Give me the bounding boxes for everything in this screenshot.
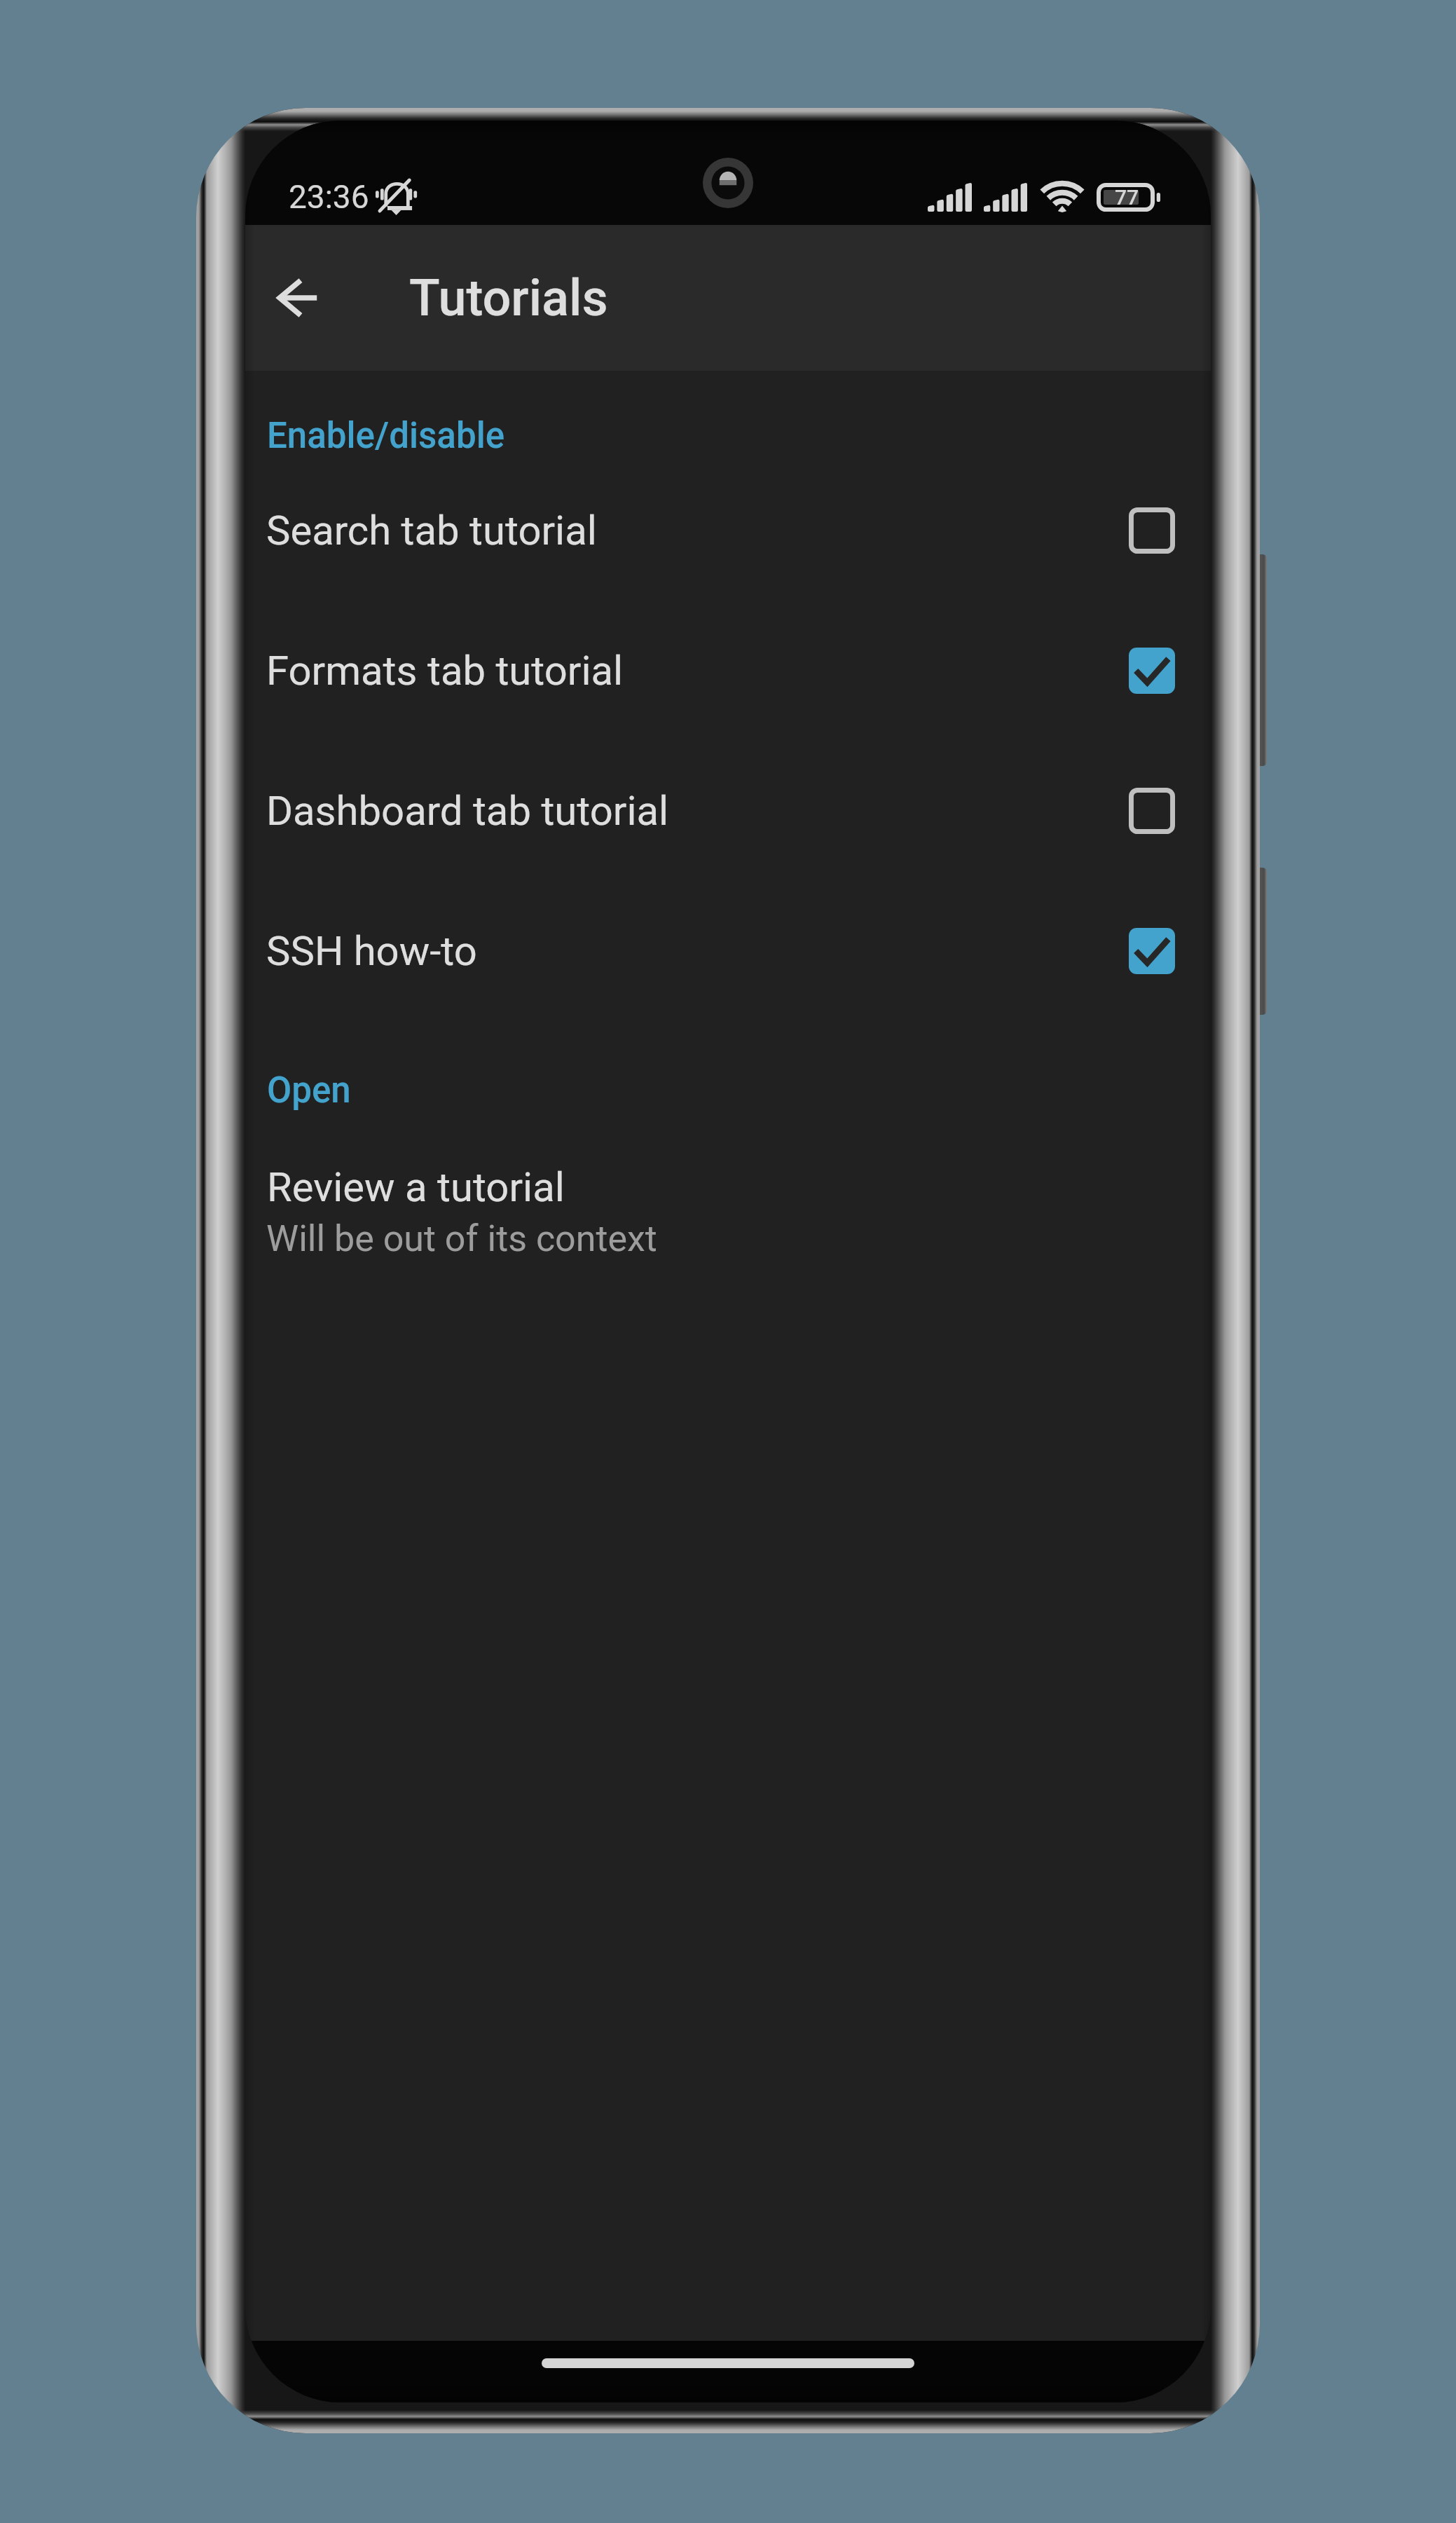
staticText: Tutorials xyxy=(409,268,608,327)
staticText: 23:36 xyxy=(289,178,369,216)
button[interactable]: Review a tutorial xyxy=(245,1163,1211,1275)
button[interactable]: SSH how-to xyxy=(245,881,1211,1021)
button[interactable]: Formats tab tutorial xyxy=(245,601,1211,741)
staticText: Search tab tutorial xyxy=(266,507,597,554)
staticText: Review a tutorial xyxy=(267,1163,565,1211)
button[interactable]: Home xyxy=(542,2358,914,2368)
staticText: Will be out of its context xyxy=(266,1217,657,1260)
button[interactable]: Search tab tutorial xyxy=(245,460,1211,601)
staticText: Formats tab tutorial xyxy=(266,647,624,695)
staticText: 77 xyxy=(1115,185,1139,210)
button[interactable]: Back xyxy=(248,249,346,347)
staticText: Dashboard tab tutorial xyxy=(266,787,669,835)
staticText: Enable/disable xyxy=(267,415,505,457)
button[interactable]: Dashboard tab tutorial xyxy=(245,741,1211,881)
staticText: SSH how-to xyxy=(266,927,477,975)
staticText: Open xyxy=(267,1069,351,1112)
